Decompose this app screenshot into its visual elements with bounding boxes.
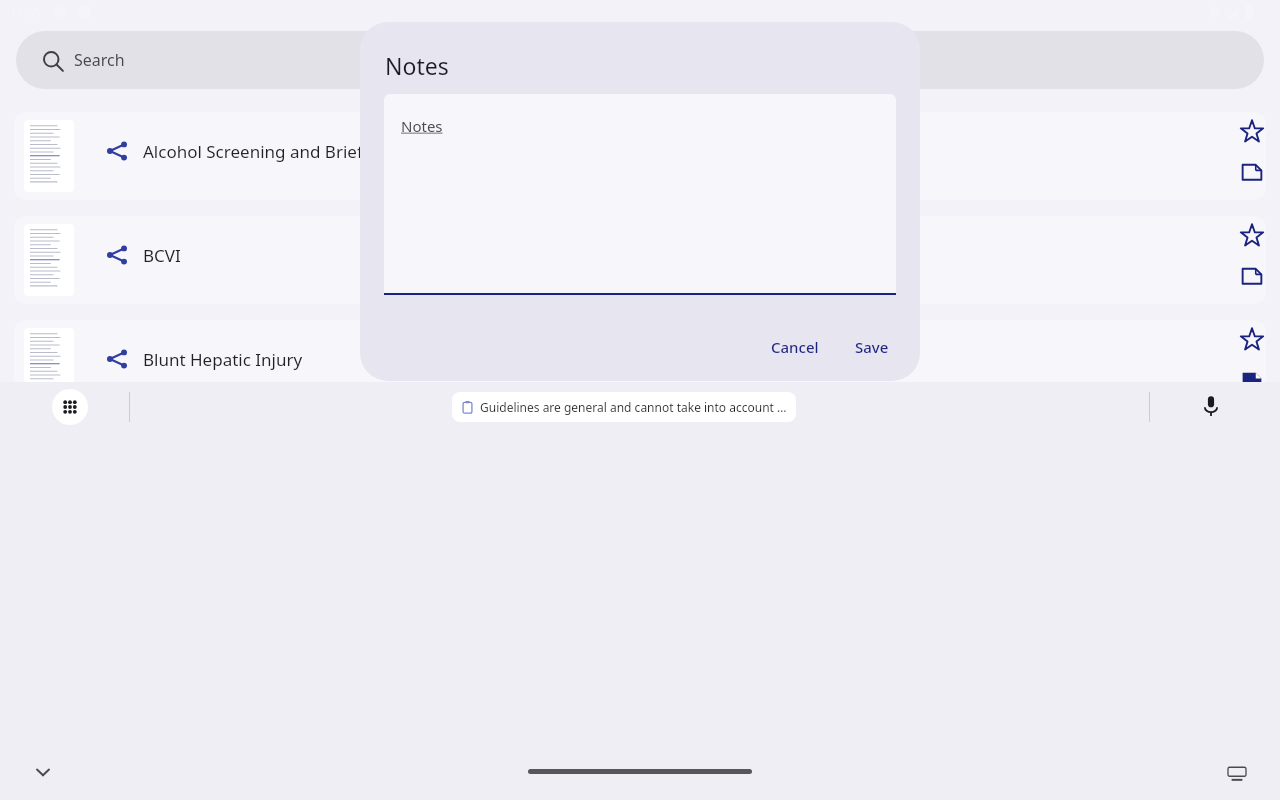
staticText: Search (74, 49, 125, 71)
button[interactable]: Voice input (1200, 395, 1222, 417)
button[interactable]: Notes (384, 94, 896, 295)
button[interactable]: Favorite (1238, 326, 1266, 354)
button[interactable]: Share (14, 216, 1266, 304)
button[interactable]: Hide keyboard (33, 762, 53, 782)
button[interactable]: Note (1240, 368, 1264, 392)
button[interactable]: Share (14, 320, 1266, 408)
button[interactable]: Share (106, 348, 128, 370)
staticText: Notes (401, 116, 443, 136)
button[interactable]: Note (1240, 160, 1264, 184)
button[interactable]: Search (16, 31, 1264, 89)
button[interactable]: Share (106, 244, 128, 266)
staticText: Save (855, 337, 889, 357)
staticText: BCVI (143, 244, 1143, 267)
button[interactable]: Cancel (759, 329, 831, 365)
button[interactable]: Change keyboard (1228, 764, 1246, 782)
button[interactable]: Share (106, 140, 128, 162)
staticText: Guidelines are general and cannot take i… (480, 399, 787, 415)
button[interactable]: Share (14, 112, 1266, 200)
staticText: Alcohol Screening and Brief Intervention (143, 140, 1143, 163)
button[interactable]: Guidelines are general and cannot take i… (452, 392, 796, 422)
staticText: Notes (385, 50, 449, 81)
staticText: Cancel (771, 337, 819, 357)
staticText: Blunt Hepatic Injury (143, 348, 1143, 371)
button[interactable]: More options (52, 389, 88, 425)
button[interactable]: Save (843, 329, 901, 365)
button[interactable]: Favorite (1238, 118, 1266, 146)
button[interactable]: Note (1240, 264, 1264, 288)
button[interactable]: Favorite (1238, 222, 1266, 250)
